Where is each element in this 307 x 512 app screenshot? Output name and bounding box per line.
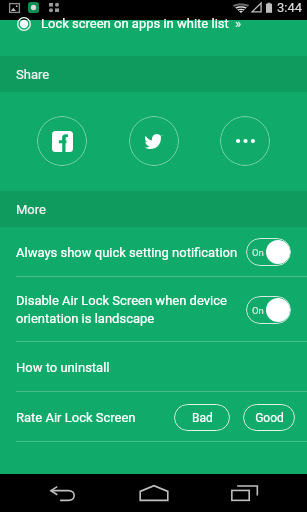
button[interactable]: Toggle on xyxy=(246,238,291,266)
button[interactable]: Good xyxy=(243,404,295,431)
button[interactable]: More share options xyxy=(220,116,270,166)
button[interactable]: Share on Twitter xyxy=(129,116,179,166)
staticText: Bad xyxy=(192,411,213,425)
button[interactable]: Back xyxy=(18,474,110,512)
button[interactable]: Recent apps xyxy=(199,474,291,512)
staticText: More xyxy=(16,202,46,217)
staticText: On xyxy=(252,305,264,316)
staticText: » xyxy=(235,16,242,31)
staticText: Disable Air Lock Screen when device orie… xyxy=(16,293,246,326)
button[interactable]: How to uninstall xyxy=(0,342,307,392)
staticText: Lock screen on apps in white list xyxy=(41,16,229,31)
button[interactable]: Bad xyxy=(174,404,230,431)
staticText: 3:44 xyxy=(277,0,303,15)
staticText: Share xyxy=(16,67,50,82)
staticText: On xyxy=(252,247,264,258)
button[interactable]: Home xyxy=(108,474,200,512)
staticText: Rate Air Lock Screen xyxy=(16,410,174,425)
staticText: How to uninstall xyxy=(16,360,110,375)
button[interactable]: Share on Facebook xyxy=(37,116,87,166)
button[interactable]: Disable Air Lock Screen when device orie… xyxy=(0,277,307,342)
staticText: Always show quick setting notification xyxy=(16,245,246,260)
button[interactable]: Lock screen on apps in white list xyxy=(0,20,307,56)
button[interactable]: Always show quick setting notification xyxy=(0,227,307,277)
button[interactable]: Toggle on xyxy=(246,296,291,324)
staticText: Good xyxy=(255,411,284,425)
